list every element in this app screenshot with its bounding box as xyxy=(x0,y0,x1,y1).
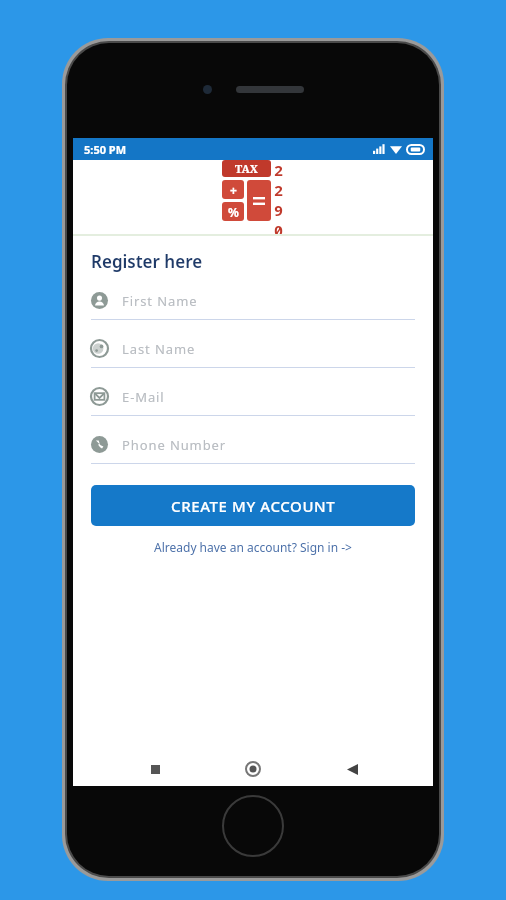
staticText: 0 xyxy=(274,220,284,234)
staticText: 2 xyxy=(274,180,284,200)
button[interactable]: Already have an account? Sign in -> xyxy=(73,539,433,555)
staticText: 5:50 PM xyxy=(84,142,127,157)
staticText: Already have an account? Sign in -> xyxy=(154,539,352,555)
button[interactable]: Recent apps xyxy=(138,752,172,786)
staticText: 9 xyxy=(274,200,284,220)
staticText: First Name xyxy=(122,292,198,310)
staticText: Register here xyxy=(91,250,203,273)
staticText: CREATE MY ACCOUNT xyxy=(171,496,336,516)
staticText: + xyxy=(230,182,237,198)
button[interactable]: Back xyxy=(335,752,369,786)
button[interactable]: Last Name xyxy=(91,330,415,378)
staticText: TAX xyxy=(235,161,258,176)
staticText: 2 xyxy=(274,160,284,180)
button[interactable]: First Name xyxy=(91,282,415,330)
button[interactable]: E-Mail xyxy=(91,378,415,426)
staticText: % xyxy=(228,204,239,220)
button[interactable]: Phone Number xyxy=(91,426,415,474)
staticText: Last Name xyxy=(122,340,196,358)
button[interactable]: CREATE MY ACCOUNT xyxy=(91,485,415,526)
staticText: Phone Number xyxy=(122,436,227,454)
staticText: E-Mail xyxy=(122,388,165,406)
button[interactable]: Home xyxy=(236,752,270,786)
